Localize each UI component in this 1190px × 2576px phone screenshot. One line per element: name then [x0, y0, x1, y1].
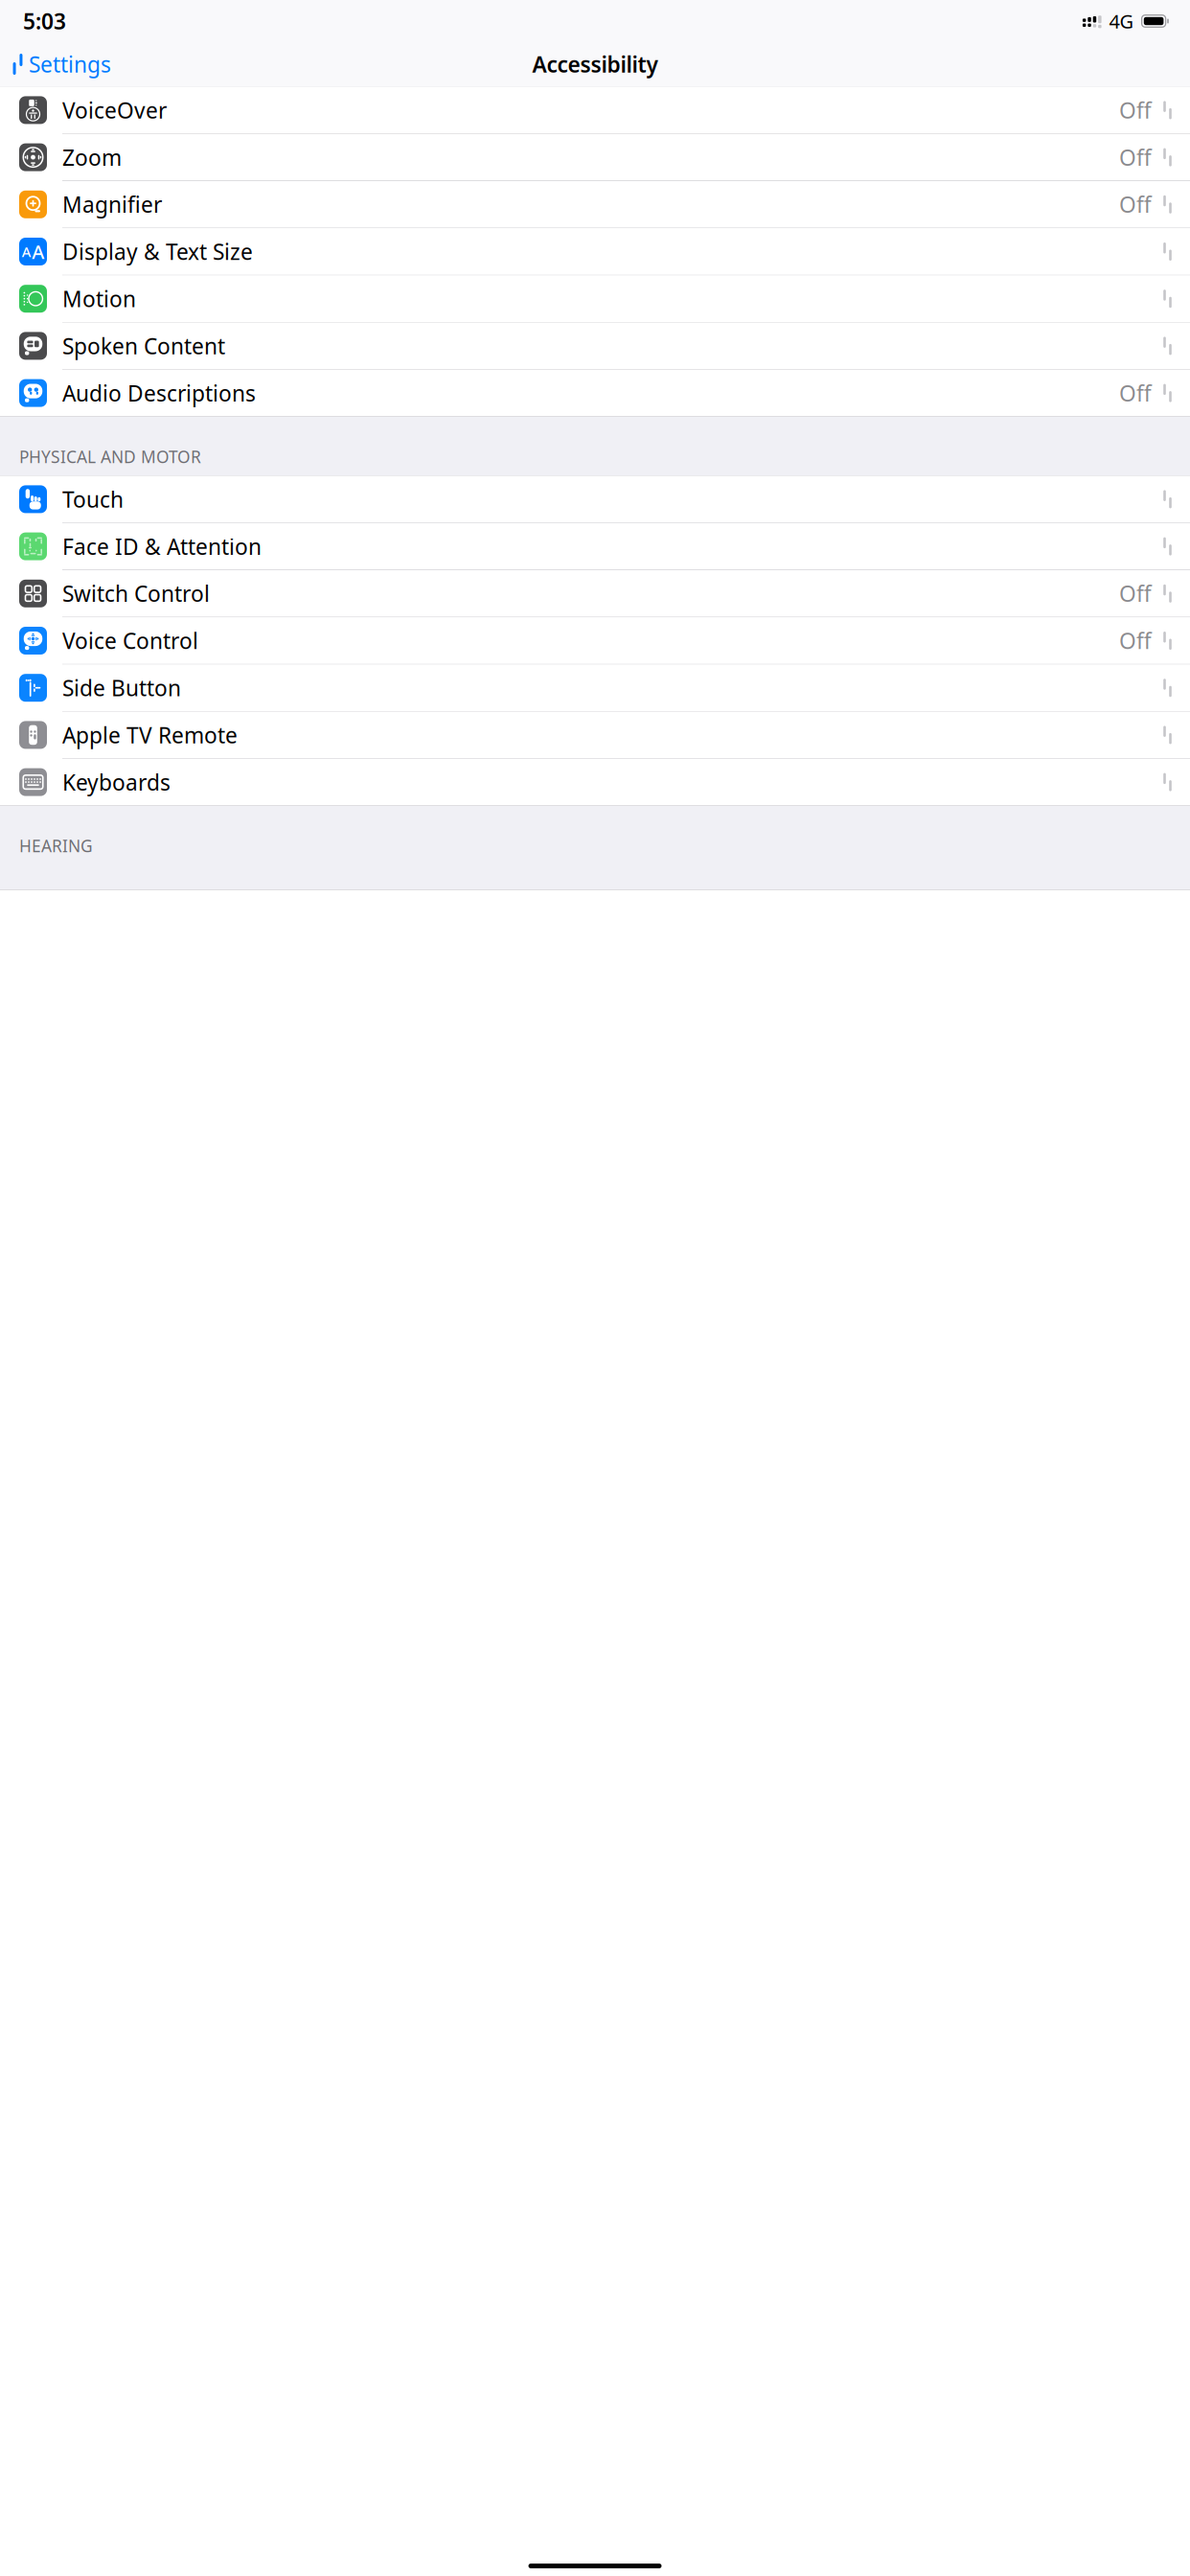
staticText: Settings [29, 50, 111, 79]
button[interactable]: Spoken Content [0, 323, 1190, 369]
button[interactable]: Motion [0, 275, 1190, 322]
staticText: Keyboards [62, 768, 171, 797]
button[interactable]: A [0, 228, 1190, 275]
staticText: Audio Descriptions [62, 379, 256, 407]
staticText: Off [1119, 626, 1152, 655]
staticText: VoiceOver [62, 96, 167, 124]
button[interactable]: Touch [0, 476, 1190, 522]
staticText: Side Button [62, 673, 181, 702]
staticText: Spoken Content [62, 331, 225, 360]
button[interactable]: Voice Control [0, 617, 1190, 664]
button[interactable]: Magnifier [0, 181, 1190, 228]
staticText: 5:03 [23, 7, 66, 35]
button[interactable]: Face ID & Attention [0, 523, 1190, 570]
button[interactable]: Apple TV Remote [0, 712, 1190, 758]
button[interactable]: VoiceOver [0, 87, 1190, 133]
staticText: Off [1119, 143, 1152, 172]
button[interactable]: Settings [0, 41, 121, 87]
staticText: PHYSICAL AND MOTOR [19, 446, 201, 468]
staticText: Motion [62, 284, 136, 313]
staticText: HEARING [19, 835, 93, 857]
button[interactable]: Switch Control [0, 570, 1190, 617]
staticText: Off [1119, 96, 1152, 124]
button[interactable]: Zoom [0, 134, 1190, 181]
staticText: Zoom [62, 143, 122, 172]
staticText: Display & Text Size [62, 237, 253, 266]
staticText: Off [1119, 190, 1152, 219]
staticText: Accessibility [532, 50, 658, 79]
staticText: 4G [1109, 8, 1134, 34]
staticText: Magnifier [62, 190, 162, 219]
staticText: Off [1119, 379, 1152, 407]
staticText: Switch Control [62, 579, 210, 608]
button[interactable]: Side Button [0, 665, 1190, 711]
button[interactable]: Keyboards [0, 759, 1190, 805]
staticText: A [22, 242, 31, 261]
staticText: Face ID & Attention [62, 532, 262, 561]
button[interactable]: Audio Descriptions [0, 370, 1190, 416]
staticText: Apple TV Remote [62, 721, 238, 749]
staticText: Touch [62, 485, 124, 514]
staticText: Voice Control [62, 626, 198, 655]
staticText: A [32, 239, 44, 264]
staticText: Off [1119, 579, 1152, 608]
